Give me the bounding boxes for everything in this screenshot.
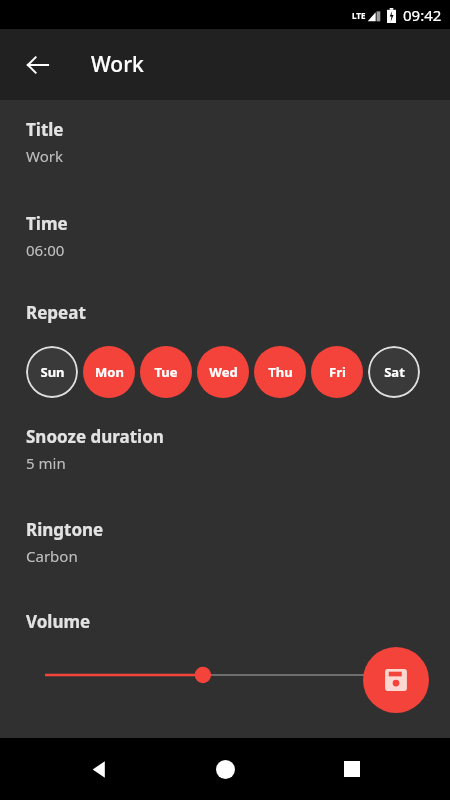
button[interactable]: Time — [0, 212, 450, 260]
button[interactable]: Tue — [140, 346, 192, 398]
button[interactable]: Thu — [254, 346, 306, 398]
staticText: Volume — [26, 610, 91, 633]
staticText: Sun — [40, 363, 65, 381]
staticText: Wed — [209, 363, 238, 381]
staticText: Ringtone — [26, 518, 104, 541]
staticText: LTE — [352, 10, 366, 21]
button[interactable]: Save — [363, 647, 429, 713]
staticText: Mon — [95, 363, 124, 381]
staticText: Repeat — [26, 301, 86, 324]
button[interactable]: Sat — [368, 346, 420, 398]
staticText: Sat — [384, 363, 405, 381]
staticText: Thu — [268, 363, 293, 381]
button[interactable]: Home — [197, 741, 253, 797]
button[interactable]: Title — [0, 118, 450, 166]
staticText: Tue — [154, 363, 178, 381]
staticText: Snooze duration — [26, 425, 164, 448]
staticText: Time — [26, 212, 68, 235]
button[interactable]: Wed — [197, 346, 249, 398]
staticText: Carbon — [26, 546, 78, 566]
button[interactable]: Ringtone — [0, 518, 450, 566]
button[interactable]: Fri — [311, 346, 363, 398]
button[interactable]: Volume slider — [0, 660, 450, 690]
staticText: 5 min — [26, 453, 66, 473]
staticText: Fri — [329, 363, 346, 381]
staticText: 09:42 — [403, 5, 442, 25]
button[interactable]: Sun — [26, 346, 78, 398]
button[interactable]: Mon — [83, 346, 135, 398]
button[interactable]: Snooze duration — [0, 425, 450, 473]
button[interactable]: Recents — [324, 741, 380, 797]
staticText: 06:00 — [26, 240, 65, 260]
button[interactable]: Back — [14, 41, 62, 89]
staticText: Work — [91, 50, 144, 79]
button[interactable]: Back — [71, 741, 127, 797]
staticText: Title — [26, 118, 64, 141]
staticText: Work — [26, 146, 63, 166]
